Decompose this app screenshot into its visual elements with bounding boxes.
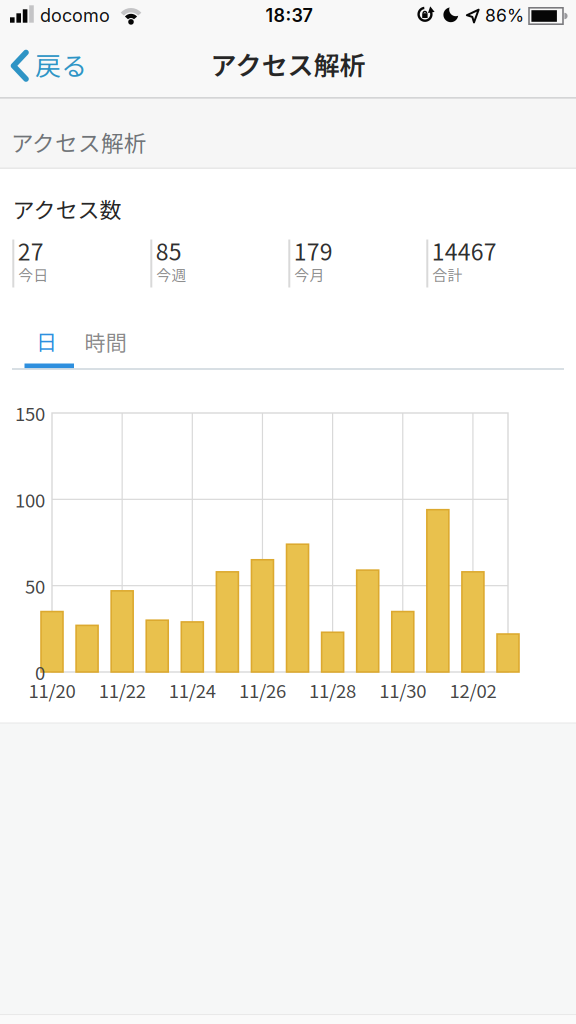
staticText: 12/02 [449, 677, 496, 703]
staticText: 11/30 [379, 677, 426, 703]
button[interactable]: 日 [24, 325, 74, 368]
staticText: docomo [40, 5, 110, 26]
staticText: アクセス解析 [11, 126, 147, 158]
staticText: 27 [18, 234, 44, 267]
staticText: 179 [294, 234, 333, 267]
button[interactable]: 戻る [0, 39, 100, 92]
staticText: 今週 [156, 264, 186, 285]
staticText: 11/26 [239, 677, 286, 703]
staticText: 日 [36, 325, 57, 356]
staticText: 0 [35, 659, 45, 685]
staticText: アクセス数 [12, 193, 121, 225]
staticText: 11/20 [28, 677, 75, 703]
staticText: 今月 [294, 264, 324, 285]
staticText: 14467 [432, 234, 497, 267]
staticText: 11/28 [309, 677, 356, 703]
staticText: 11/24 [169, 677, 216, 703]
staticText: 150 [15, 400, 45, 426]
staticText: 86% [485, 5, 524, 26]
staticText: 85 [156, 234, 182, 267]
staticText: 100 [15, 486, 45, 513]
staticText: 時間 [84, 326, 126, 357]
staticText: 戻る [35, 46, 87, 83]
staticText: 合計 [432, 264, 462, 285]
staticText: アクセス解析 [210, 45, 365, 83]
staticText: 18:37 [265, 5, 312, 26]
button[interactable]: 時間 [74, 325, 136, 368]
staticText: 11/22 [99, 677, 146, 703]
staticText: 50 [25, 572, 45, 599]
staticText: 今日 [18, 264, 48, 285]
